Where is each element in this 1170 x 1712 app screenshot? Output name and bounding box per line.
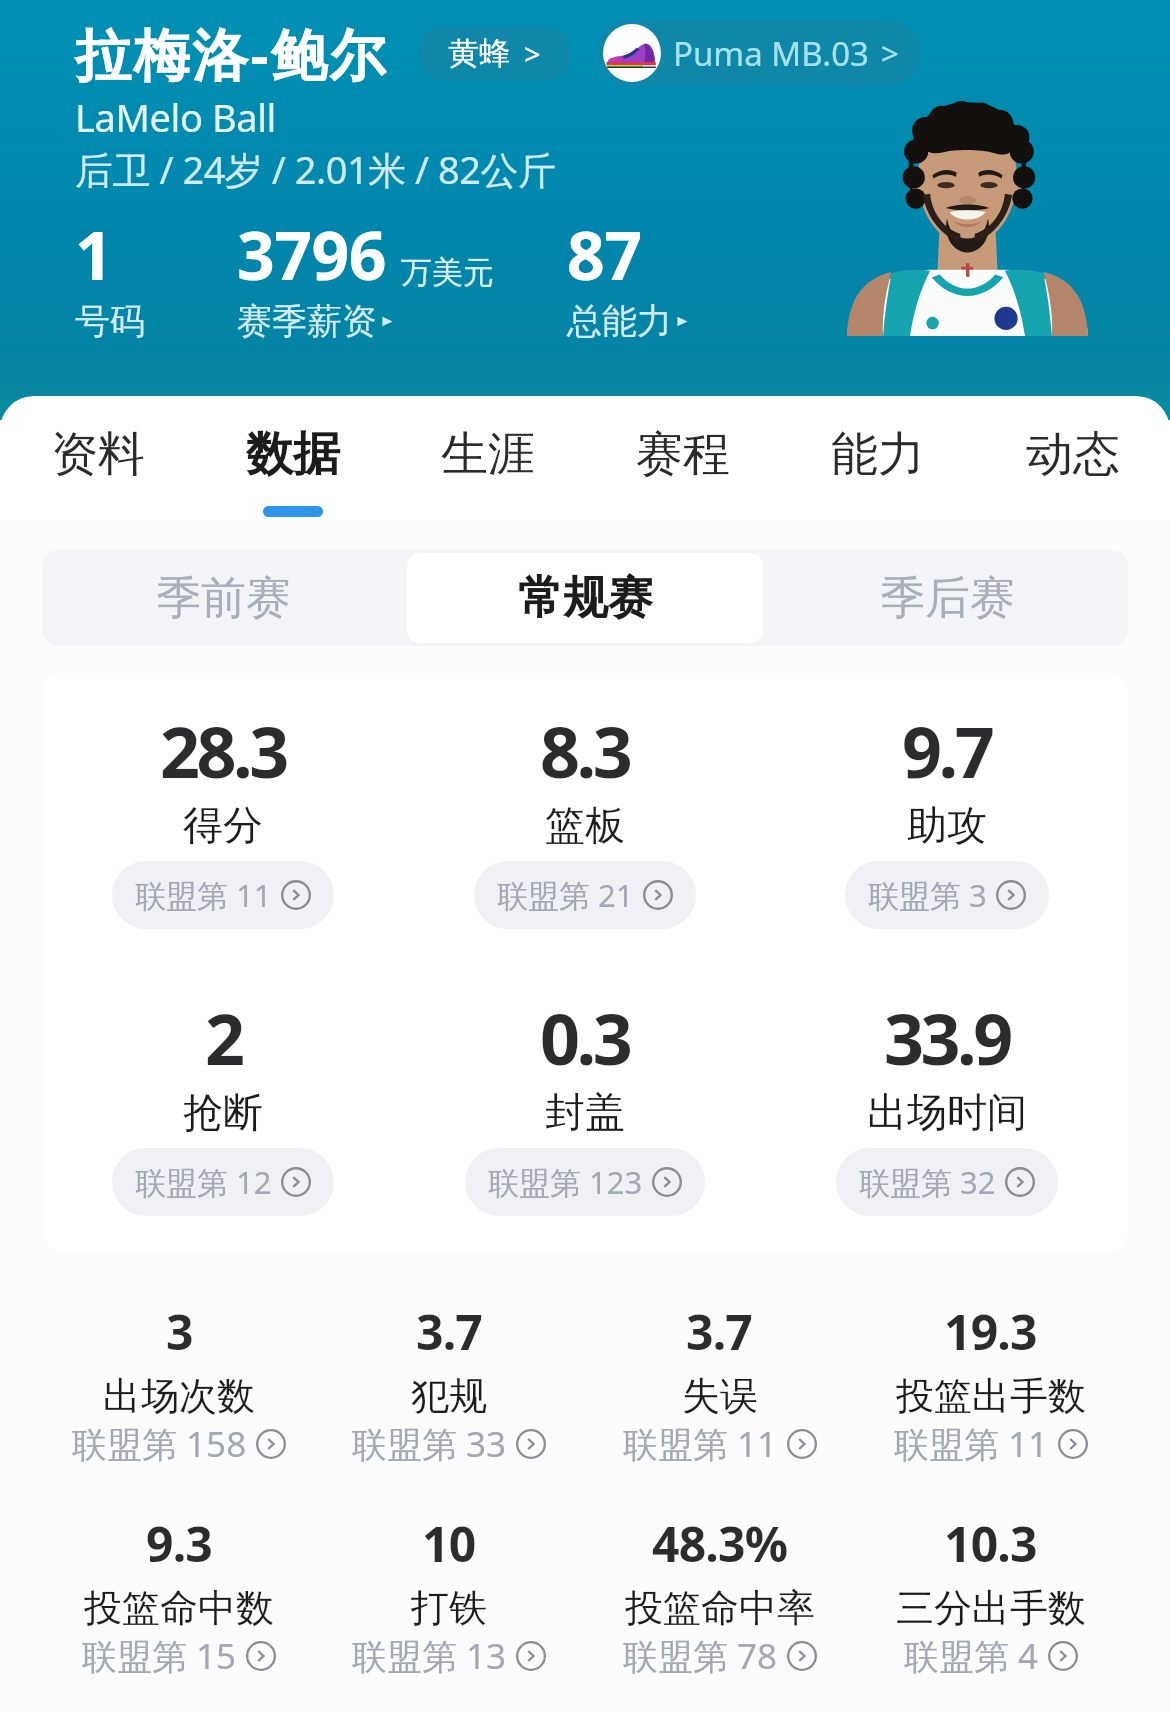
staticText: 三分出手数 [896,1584,1086,1632]
button[interactable]: 28.3 [42,703,404,929]
staticText: 联盟第 123 [488,1161,643,1203]
staticText: 后卫 / 24岁 / 2.01米 / 82公斤 [75,143,556,195]
staticText: 3.7 [686,1299,753,1364]
staticText: 3 [166,1299,193,1364]
button[interactable]: 3 [44,1299,314,1468]
staticText: 数据 [246,425,340,484]
staticText: 0.3 [540,990,630,1085]
button[interactable]: 能力 [780,396,975,521]
staticText: 28.3 [160,703,286,798]
staticText: 3796 [237,209,387,299]
staticText: 3.7 [416,1299,483,1364]
staticText: 得分 [183,800,263,850]
staticText: 能力 [831,425,925,484]
button[interactable]: 33.9 [766,990,1128,1216]
staticText: 季前赛 [156,570,291,627]
staticText: 1 [75,209,113,299]
staticText: 赛季薪资 [237,299,377,343]
button[interactable]: 生涯 [390,396,585,521]
button[interactable]: 10 [314,1511,584,1680]
staticText: 打铁 [411,1584,487,1632]
button[interactable]: 联盟第 11 [112,861,334,929]
staticText: 动态 [1026,425,1120,484]
button[interactable]: 联盟第 33 [348,1420,550,1468]
staticText: 拉梅洛-鲍尔 [75,15,388,91]
button[interactable]: 季后赛 [769,553,1125,643]
button[interactable]: 黄蜂 [418,26,571,81]
button[interactable]: 赛程 [585,396,780,521]
button[interactable]: 联盟第 15 [78,1632,280,1680]
button[interactable]: 联盟第 78 [619,1632,821,1680]
staticText: 9.7 [902,703,992,798]
staticText: 抢断 [183,1087,263,1137]
staticText: 联盟第 21 [497,874,634,916]
button[interactable]: 联盟第 13 [348,1632,550,1680]
staticText: 投篮出手数 [896,1372,1086,1420]
staticText: 犯规 [411,1372,487,1420]
button[interactable]: 资料 [0,396,195,521]
button[interactable]: 3.7 [314,1299,584,1468]
button[interactable]: 联盟第 12 [112,1148,334,1216]
button[interactable]: 联盟第 4 [900,1632,1082,1680]
button[interactable]: 常规赛 [407,553,763,643]
staticText: LaMelo Ball [75,91,277,143]
button[interactable]: 19.3 [855,1299,1126,1468]
staticText: 季后赛 [880,570,1015,627]
staticText: 黄蜂 [448,34,510,73]
staticText: 总能力 [567,299,672,343]
staticText: 87 [567,209,642,299]
staticText: > [524,34,541,73]
staticText: > [881,32,899,74]
staticText: 联盟第 158 [72,1420,247,1468]
staticText: 出场次数 [103,1372,255,1420]
staticText: 联盟第 32 [859,1161,996,1203]
staticText: 10 [422,1511,476,1576]
button[interactable]: 3.7 [584,1299,855,1468]
button[interactable]: 联盟第 158 [68,1420,290,1468]
staticText: 联盟第 78 [623,1632,778,1680]
staticText: 联盟第 33 [352,1420,507,1468]
staticText: 生涯 [441,425,535,484]
staticText: 联盟第 3 [868,874,987,916]
button[interactable]: 季前赛 [45,553,401,643]
staticText: 8.3 [540,703,630,798]
staticText: 联盟第 13 [352,1632,507,1680]
staticText: 联盟第 15 [82,1632,237,1680]
button[interactable]: 10.3 [855,1511,1126,1680]
staticText: 联盟第 12 [135,1161,272,1203]
staticText: 常规赛 [518,570,653,627]
staticText: 2 [205,990,242,1085]
button[interactable]: 联盟第 11 [890,1420,1092,1468]
staticText: 失误 [682,1372,758,1420]
button[interactable]: 8.3 [404,703,766,929]
button[interactable]: 48.3% [584,1511,855,1680]
button[interactable]: 9.7 [766,703,1128,929]
button[interactable]: 联盟第 3 [845,861,1049,929]
button[interactable]: 动态 [975,396,1170,521]
staticText: 48.3% [652,1511,788,1576]
button[interactable]: 9.3 [44,1511,314,1680]
staticText: 出场时间 [867,1087,1027,1137]
button[interactable]: 3796 [237,209,567,343]
staticText: 封盖 [545,1087,625,1137]
button[interactable]: 联盟第 21 [474,861,696,929]
staticText: 助攻 [907,800,987,850]
staticText: 投篮命中率 [625,1584,815,1632]
staticText: 19.3 [944,1299,1037,1364]
button[interactable]: 0.3 [404,990,766,1216]
staticText: 10.3 [944,1511,1037,1576]
button[interactable]: 2 [42,990,404,1216]
button[interactable]: 87 [567,209,767,343]
staticText: 万美元 [401,253,494,292]
button[interactable]: 联盟第 123 [465,1148,705,1216]
button[interactable]: 联盟第 32 [836,1148,1058,1216]
staticText: 9.3 [146,1511,213,1576]
button[interactable]: Puma MB.03 [597,20,920,86]
staticText: 号码 [75,299,145,343]
staticText: 赛程 [636,425,730,484]
button[interactable]: 数据 [195,396,390,521]
button[interactable]: 联盟第 11 [619,1420,821,1468]
staticText: 篮板 [545,800,625,850]
staticText: 联盟第 4 [904,1632,1039,1680]
staticText: 33.9 [884,990,1010,1085]
